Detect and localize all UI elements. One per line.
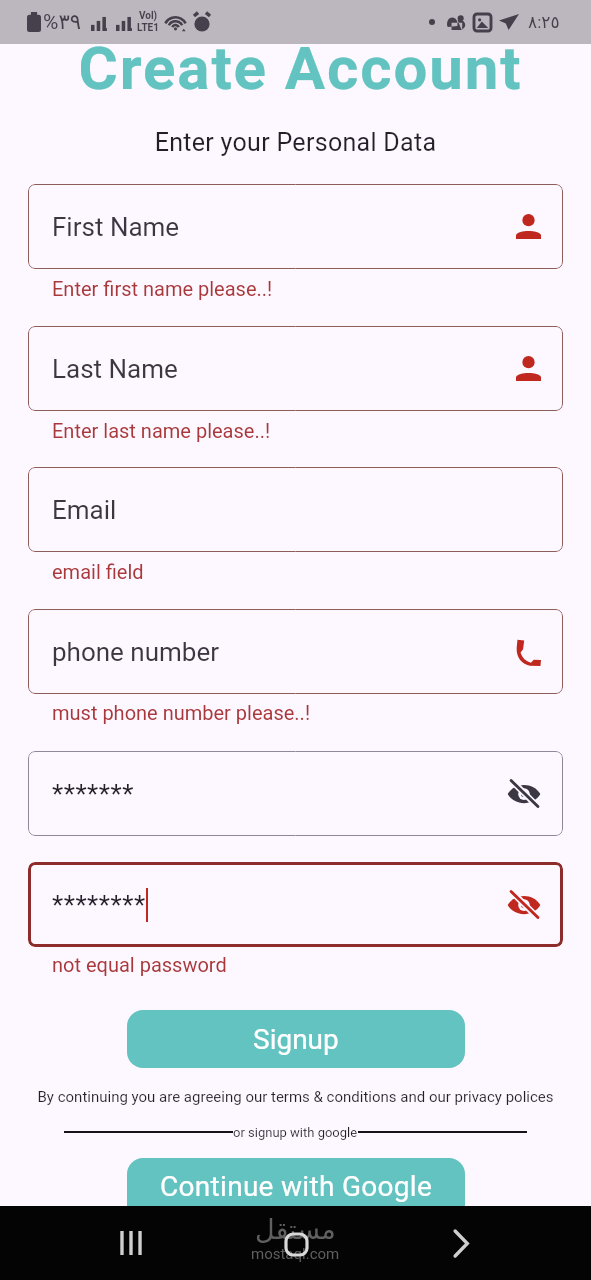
staticText: mostaql.com [251,1245,340,1263]
other: Toggle password visibility [507,779,541,808]
button[interactable]: Last Name [28,326,563,411]
staticText: ٨:٢٥ [528,12,560,32]
staticText: ******* [52,779,134,809]
staticText: must phone number please..! [52,701,311,724]
button[interactable]: Home [273,1220,319,1266]
staticText: or signup with google [233,1125,358,1140]
staticText: ******** [52,890,146,920]
staticText: Enter your Personal Data [0,128,591,157]
other: Person [516,214,541,239]
staticText: phone number [52,637,220,667]
other: Toggle password visibility [507,890,541,919]
staticText: email field [52,560,144,583]
staticText: Vol) [139,10,158,22]
other: Person [516,356,541,381]
staticText: Enter last name please..! [52,419,271,442]
button[interactable]: ******* [28,751,563,836]
staticText: Enter first name please..! [52,277,273,300]
button[interactable]: First Name [28,184,563,269]
staticText: مستقل [255,1214,336,1245]
button[interactable]: Back [438,1220,484,1266]
staticText: %٣٩ [43,10,81,35]
staticText: Continue with Google [160,1170,433,1203]
staticText: By continuing you are agreeing our terms… [0,1088,591,1106]
button[interactable]: Email [28,467,563,552]
staticText: LTE1 [137,22,159,34]
staticText: Last Name [52,354,178,384]
button[interactable]: Signup [127,1010,465,1068]
staticText: First Name [52,212,180,242]
staticText: Create Account [5,33,591,103]
button[interactable]: ******** [28,862,563,947]
staticText: not equal password [52,953,227,976]
button[interactable]: phone number [28,609,563,694]
button[interactable]: Recents [108,1220,154,1266]
other: Phone [513,638,541,666]
staticText: Signup [253,1023,339,1056]
staticText: Email [52,495,117,525]
button[interactable]: Continue with Google [127,1158,465,1233]
